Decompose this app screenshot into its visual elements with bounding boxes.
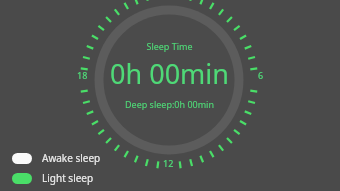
staticText: 18	[77, 69, 88, 81]
staticText: Sleep Time	[146, 40, 193, 52]
staticText: 6	[258, 69, 264, 81]
staticText: 12	[163, 157, 174, 169]
button[interactable]: Sleep dial	[0, 0, 340, 191]
staticText: 0h 00min	[110, 55, 229, 92]
button[interactable]: Light sleep	[12, 171, 94, 185]
staticText: Light sleep	[42, 171, 94, 185]
staticText: Awake sleep	[42, 151, 101, 165]
staticText: Deep sleep:0h 00min	[125, 98, 214, 110]
button[interactable]: Awake sleep	[12, 151, 101, 165]
